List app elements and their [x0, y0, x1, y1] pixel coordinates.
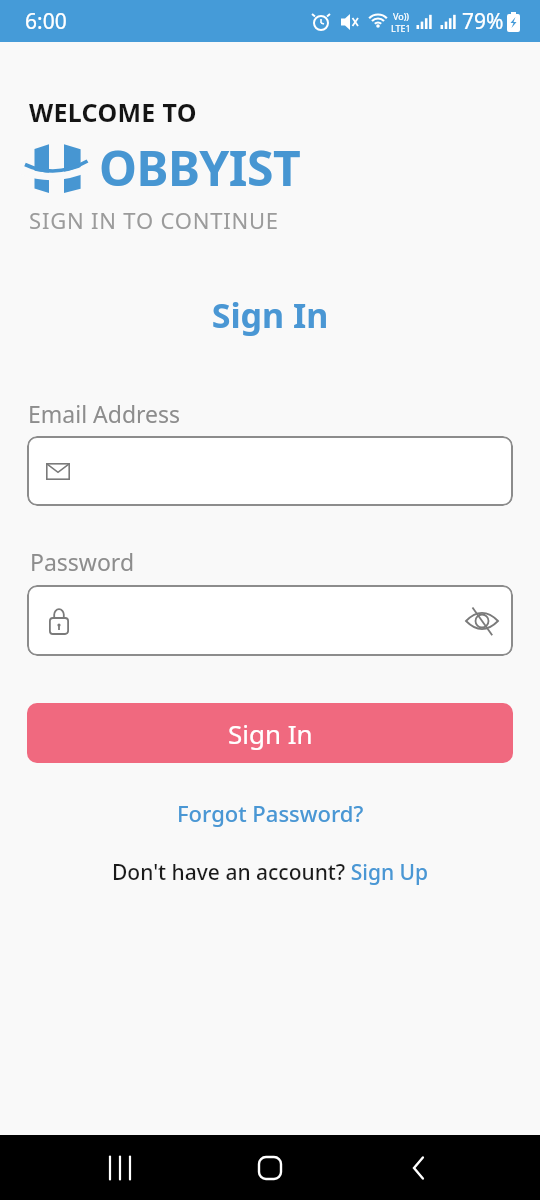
staticText: SIGN IN TO CONTINUE [29, 205, 279, 235]
staticText: 6:00 [25, 7, 67, 36]
staticText: Email Address [28, 398, 181, 429]
button[interactable] [90, 1138, 150, 1198]
staticText: Sign In [228, 716, 313, 751]
staticText: Sign In [0, 292, 540, 338]
staticText: OBBYIST [99, 135, 301, 200]
staticText: 79% [462, 7, 504, 36]
button[interactable] [27, 436, 513, 506]
button[interactable]: Forgot Password? [177, 798, 364, 828]
button[interactable] [390, 1138, 450, 1198]
staticText: Vo)) [393, 10, 410, 22]
staticText: Forgot Password? [177, 798, 364, 828]
button[interactable]: Don't have an account? Sign Up [112, 858, 429, 887]
staticText: LTE1 [391, 22, 411, 34]
button[interactable] [27, 585, 513, 656]
button[interactable]: Sign In [27, 703, 513, 763]
staticText: Don't have an account? Sign Up [112, 858, 429, 887]
staticText: WELCOME TO [29, 95, 197, 129]
staticText: Password [30, 546, 135, 577]
button[interactable] [240, 1138, 300, 1198]
